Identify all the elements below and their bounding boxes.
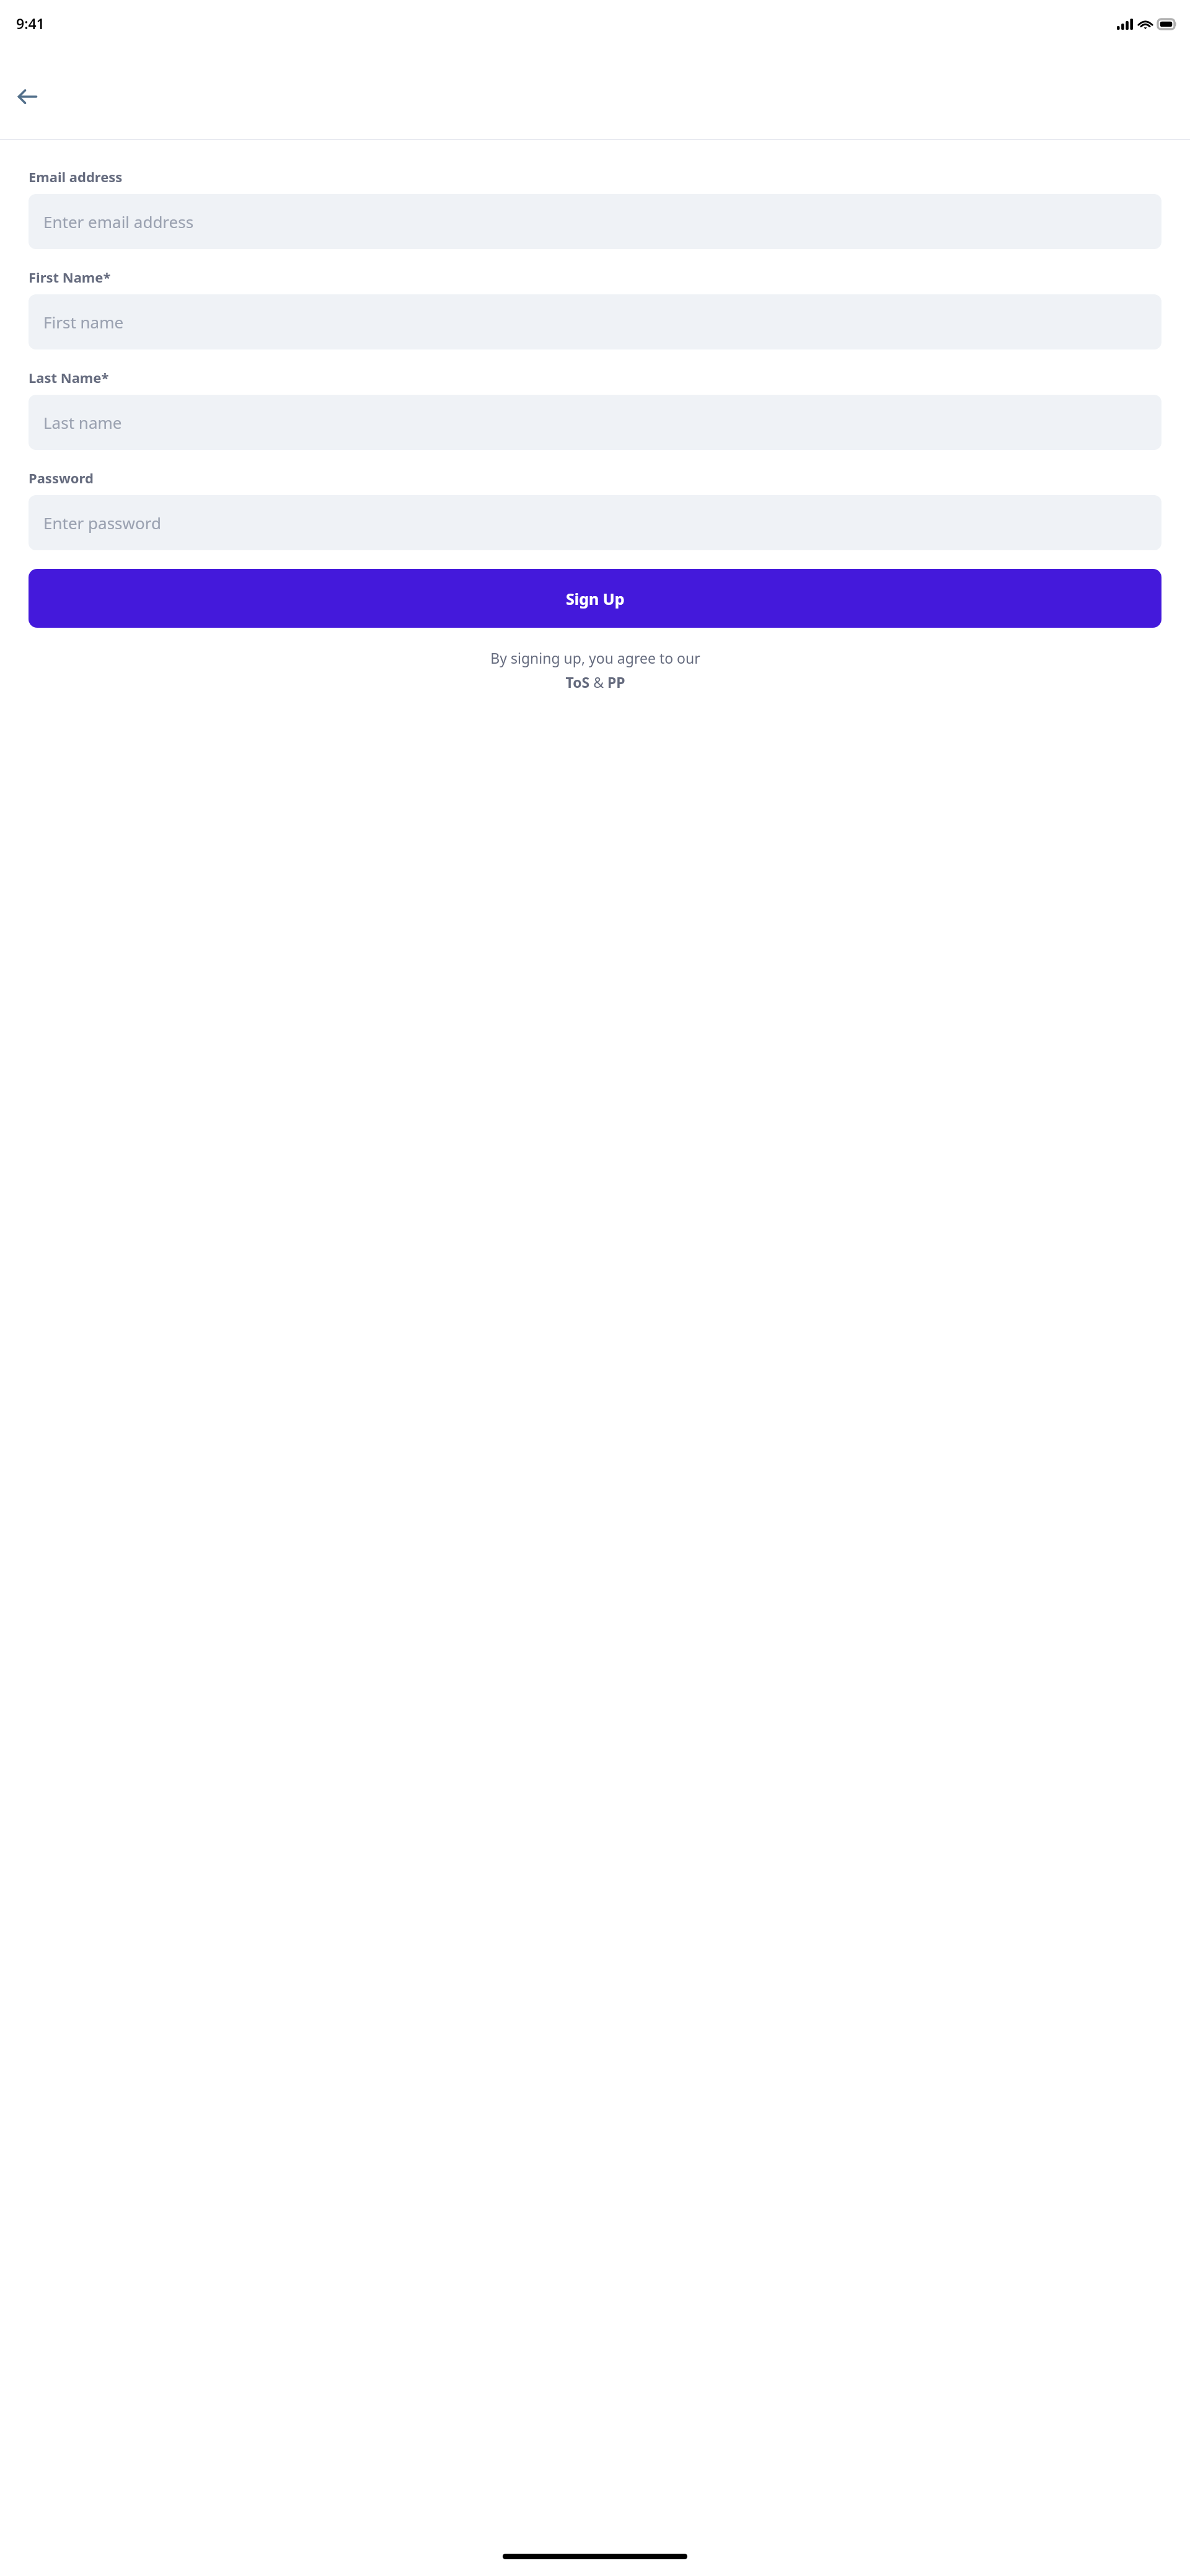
button[interactable]: Last name (29, 395, 1161, 450)
button[interactable]: First name (29, 294, 1161, 349)
staticText: Email address (29, 167, 123, 186)
staticText: First name (43, 311, 124, 333)
button[interactable]: ToS & PP (563, 671, 628, 693)
staticText: By signing up, you agree to our (490, 648, 700, 667)
staticText: 9:41 (16, 14, 45, 33)
staticText: Password (29, 468, 94, 487)
staticText: Last name (43, 411, 122, 433)
staticText: Last Name* (29, 368, 109, 387)
button[interactable]: Back (7, 77, 47, 116)
staticText: Enter password (43, 512, 161, 534)
staticText: Sign Up (566, 588, 625, 609)
staticText: First Name* (29, 268, 111, 286)
button[interactable]: Enter password (29, 495, 1161, 550)
button[interactable]: Enter email address (29, 194, 1161, 249)
staticText: Enter email address (43, 211, 194, 232)
staticText: ToS & PP (565, 672, 625, 692)
button[interactable]: Sign Up (29, 569, 1161, 628)
